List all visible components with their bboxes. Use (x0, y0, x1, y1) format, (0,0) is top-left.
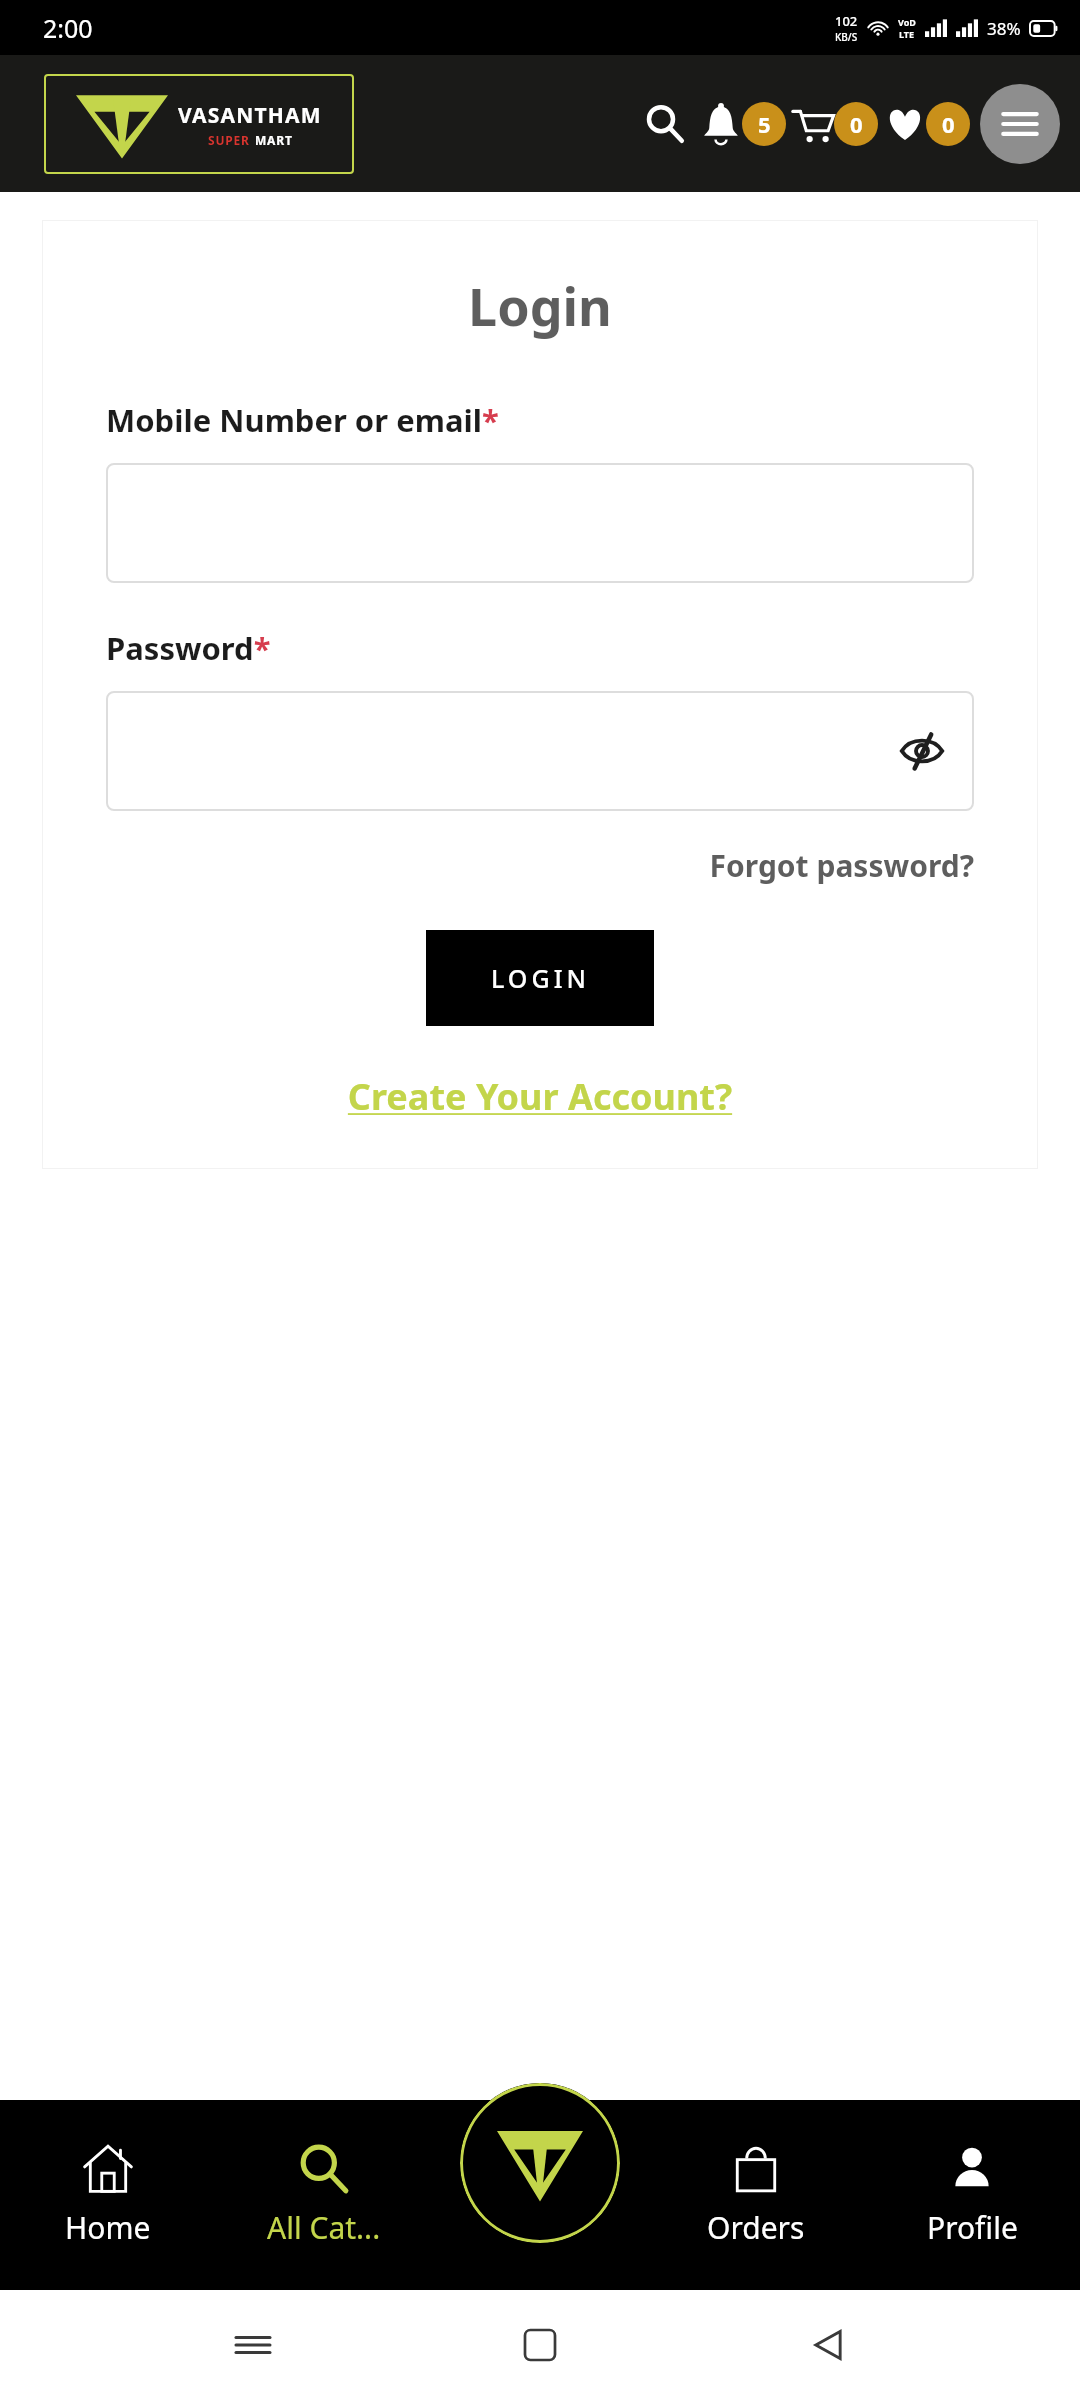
button[interactable]: Back (793, 2310, 863, 2380)
staticText: Password* (106, 627, 271, 669)
button[interactable]: Recents (218, 2310, 288, 2380)
button[interactable]: Vasantham (460, 2083, 620, 2243)
button[interactable]: Home (505, 2310, 575, 2380)
staticText: LOGIN (491, 961, 590, 995)
staticText: 38% (987, 17, 1021, 40)
button[interactable]: Profile (864, 2100, 1080, 2290)
staticText: VoD (898, 16, 916, 28)
button[interactable]: Show password (894, 723, 950, 779)
button[interactable]: Search (634, 93, 696, 155)
staticText: KB/S (835, 30, 858, 44)
button[interactable]: Show password (106, 691, 974, 811)
staticText: 102 (835, 12, 858, 30)
button[interactable]: All Cat... (216, 2100, 432, 2290)
button[interactable]: Vasantham Super Mart home (44, 74, 354, 174)
button[interactable]: Create Your Account? (106, 1072, 974, 1121)
staticText: All Cat... (267, 2207, 381, 2248)
button[interactable]: Cart (792, 94, 878, 154)
staticText: MART (255, 132, 293, 148)
button[interactable]: Menu (980, 84, 1060, 164)
staticText: 2:00 (43, 11, 93, 45)
button[interactable]: Notifications (700, 94, 786, 154)
staticText: Profile (927, 2207, 1018, 2248)
staticText: 5 (758, 109, 771, 139)
staticText: Login (106, 270, 974, 341)
button[interactable]: Forgot password? (106, 845, 974, 886)
staticText: Home (65, 2207, 151, 2248)
staticText: LTE (899, 28, 915, 40)
staticText: 0 (850, 109, 863, 139)
button[interactable] (106, 463, 974, 583)
button[interactable]: Wishlist (884, 94, 970, 154)
staticText: VASANTHAM (178, 101, 322, 130)
button[interactable]: Orders (648, 2100, 864, 2290)
staticText: Mobile Number or email* (106, 399, 499, 441)
staticText: SUPER (208, 132, 250, 148)
button[interactable]: Home (0, 2100, 216, 2290)
staticText: Orders (707, 2207, 805, 2248)
button[interactable]: LOGIN (426, 930, 654, 1026)
staticText: 0 (942, 109, 955, 139)
